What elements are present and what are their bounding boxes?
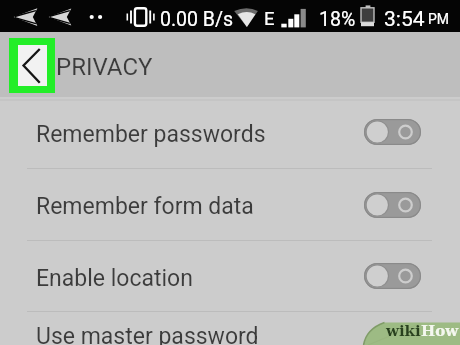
button[interactable]: Remember passwords	[0, 101, 460, 168]
staticText: How	[421, 322, 459, 340]
button[interactable]: Use master password	[0, 312, 460, 345]
button[interactable]: Back	[18, 45, 47, 86]
staticText: Enable location	[36, 265, 364, 292]
button[interactable]: Enable location	[0, 241, 460, 311]
staticText: Remember form data	[36, 193, 364, 220]
staticText: Remember passwords	[36, 121, 364, 148]
button[interactable]: Off	[364, 119, 421, 145]
staticText: Use master password	[36, 323, 259, 345]
staticText: wiki	[386, 322, 421, 340]
staticText: PM	[428, 11, 450, 27]
button[interactable]: Remember form data	[0, 169, 460, 240]
button[interactable]: Off	[364, 263, 421, 289]
staticText: 18%	[319, 8, 356, 31]
staticText: 3:54	[384, 7, 425, 32]
staticText: E	[264, 8, 275, 30]
button[interactable]: Off	[363, 335, 420, 345]
staticText: PRIVACY	[56, 53, 153, 81]
button[interactable]: Off	[364, 192, 421, 218]
staticText: 0.00 B/s	[160, 8, 234, 31]
